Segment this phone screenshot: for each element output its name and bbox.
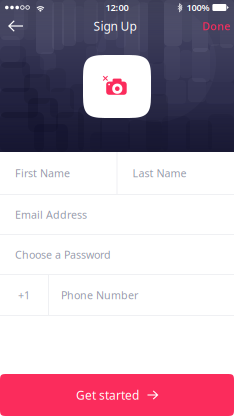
staticText: 100%: [186, 1, 209, 14]
staticText: Last Name: [132, 166, 186, 180]
button[interactable]: Get started: [0, 374, 234, 416]
button[interactable]: Done: [198, 15, 234, 37]
staticText: +1: [18, 288, 30, 302]
staticText: Email Address: [15, 207, 87, 222]
staticText: Phone Number: [61, 288, 138, 302]
staticText: First Name: [15, 166, 70, 180]
staticText: Get started: [76, 387, 139, 403]
button[interactable]: Back: [0, 15, 32, 37]
staticText: Done: [202, 19, 230, 33]
staticText: 12:00: [105, 1, 128, 14]
staticText: Choose a Password: [15, 247, 111, 262]
staticText: Sign Up: [93, 18, 136, 34]
